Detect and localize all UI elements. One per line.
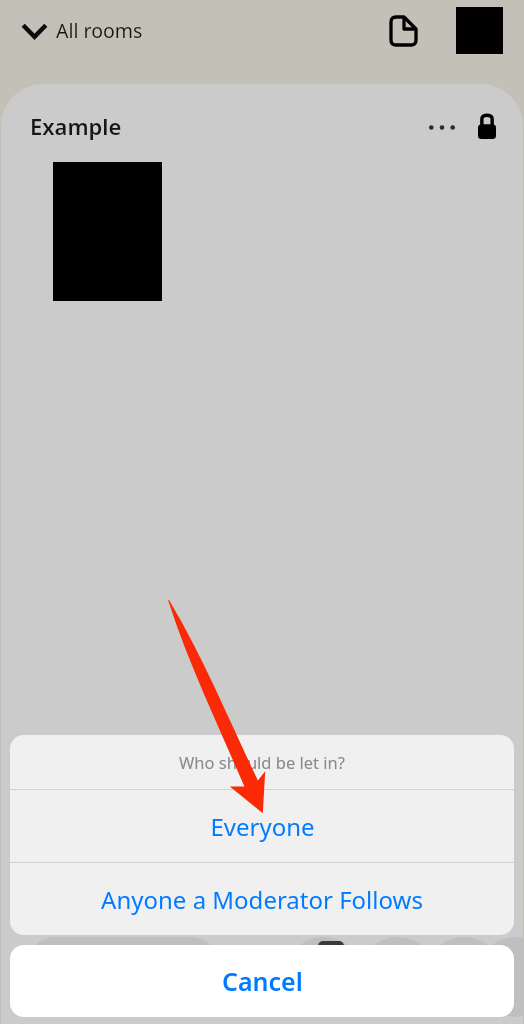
staticText: Who should be let in? bbox=[179, 751, 345, 773]
staticText: Cancel bbox=[222, 964, 303, 998]
button[interactable]: More options bbox=[422, 106, 462, 146]
staticText: All rooms bbox=[56, 17, 143, 44]
staticText: Example bbox=[30, 111, 122, 141]
button[interactable]: Notes bbox=[381, 9, 425, 53]
button[interactable]: Cancel bbox=[10, 945, 514, 1017]
button[interactable]: Everyone bbox=[10, 790, 514, 862]
staticText: Anyone a Moderator Follows bbox=[101, 883, 423, 916]
button[interactable]: Anyone a Moderator Follows bbox=[10, 863, 514, 935]
staticText: Everyone bbox=[210, 810, 315, 843]
button[interactable]: All rooms bbox=[0, 11, 153, 50]
button[interactable]: Private room bbox=[467, 106, 507, 146]
